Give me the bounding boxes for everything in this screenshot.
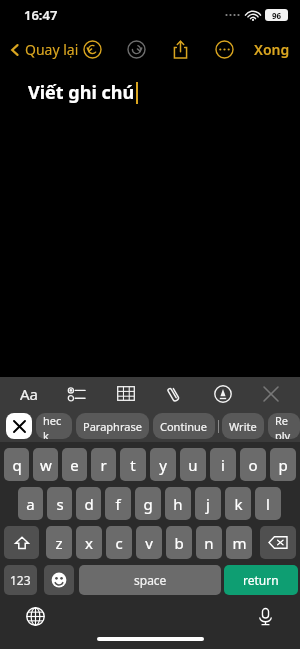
button[interactable]: m (226, 526, 252, 559)
button[interactable]: v (136, 526, 162, 559)
button[interactable]: Undo (77, 34, 107, 64)
button[interactable]: Reply (268, 413, 300, 439)
button[interactable]: Emoji (44, 565, 74, 595)
button[interactable]: heck (36, 413, 72, 439)
staticText: m (232, 533, 247, 553)
staticText: Viết ghi chú (28, 80, 135, 105)
staticText: a (26, 494, 35, 514)
button[interactable]: Xong (254, 40, 290, 59)
staticText: heck (43, 413, 65, 439)
button[interactable]: Change keyboard language (18, 599, 52, 633)
button[interactable]: 123 (4, 565, 37, 595)
button[interactable]: g (135, 487, 161, 520)
button[interactable]: d (76, 487, 101, 520)
button[interactable]: Dismiss suggestions (6, 413, 32, 439)
button[interactable]: return (224, 565, 298, 595)
staticText: u (188, 455, 198, 475)
button[interactable]: a (18, 487, 43, 520)
staticText: w (40, 455, 52, 475)
staticText: Paraphrase (83, 419, 142, 434)
button[interactable]: p (270, 448, 296, 481)
staticText: t (130, 455, 136, 475)
staticText: p (278, 455, 288, 475)
button[interactable]: t (120, 448, 146, 481)
button[interactable]: Paraphrase (76, 413, 149, 439)
staticText: h (173, 494, 183, 514)
staticText: Quay lại (25, 40, 79, 59)
staticText: i (221, 455, 225, 475)
button[interactable]: space (79, 565, 221, 595)
staticText: o (248, 455, 258, 475)
button[interactable]: u (180, 448, 206, 481)
staticText: j (206, 494, 210, 514)
button[interactable]: Backspace (260, 526, 296, 559)
staticText: k (234, 494, 243, 514)
button[interactable]: l (255, 487, 281, 520)
button[interactable]: More (209, 34, 239, 64)
button[interactable]: Markup (203, 377, 243, 410)
button[interactable]: f (105, 487, 131, 520)
staticText: g (143, 494, 153, 514)
staticText: Continue (160, 419, 208, 434)
staticText: d (84, 494, 94, 514)
button[interactable]: h (165, 487, 191, 520)
button[interactable]: Checklist (57, 377, 97, 410)
staticText: c (115, 533, 123, 553)
button[interactable]: Dictate (248, 599, 282, 633)
staticText: r (100, 455, 107, 475)
button[interactable]: s (47, 487, 72, 520)
button[interactable]: Redo (121, 34, 151, 64)
button[interactable]: Attach (154, 377, 194, 410)
staticText: x (85, 533, 93, 553)
button[interactable]: i (210, 448, 236, 481)
staticText: q (12, 455, 22, 475)
staticText: Reply (275, 413, 293, 439)
staticText: f (115, 494, 121, 514)
button[interactable]: Table (106, 377, 146, 410)
button[interactable]: Share (165, 34, 195, 64)
button[interactable]: q (4, 448, 29, 481)
staticText: z (55, 533, 63, 553)
staticText: 123 (10, 572, 31, 588)
button[interactable]: e (62, 448, 87, 481)
button[interactable]: w (33, 448, 58, 481)
staticText: space (134, 572, 167, 588)
button[interactable]: o (240, 448, 266, 481)
staticText: Xong (254, 40, 290, 59)
button[interactable]: c (106, 526, 132, 559)
button[interactable]: x (76, 526, 102, 559)
button[interactable]: Write (222, 413, 264, 439)
staticText: 96 (272, 10, 282, 21)
button[interactable]: z (46, 526, 72, 559)
staticText: v (145, 533, 153, 553)
staticText: y (159, 455, 167, 475)
staticText: Aa (20, 384, 39, 404)
button[interactable]: j (195, 487, 221, 520)
staticText: 16:47 (24, 6, 58, 24)
staticText: return (243, 572, 279, 588)
button[interactable]: r (91, 448, 116, 481)
button[interactable]: k (225, 487, 251, 520)
button[interactable]: Shift (4, 526, 39, 559)
staticText: l (266, 494, 270, 514)
staticText: Write (229, 419, 257, 434)
button[interactable]: b (166, 526, 192, 559)
button[interactable]: Quay lại (8, 40, 79, 59)
staticText: n (204, 533, 214, 553)
button[interactable]: Close keyboard (251, 377, 291, 410)
button[interactable]: Continue (153, 413, 215, 439)
button[interactable]: y (150, 448, 176, 481)
button[interactable]: Aa (9, 377, 49, 410)
staticText: e (70, 455, 79, 475)
staticText: b (174, 533, 184, 553)
staticText: s (56, 494, 64, 514)
button[interactable]: n (196, 526, 222, 559)
